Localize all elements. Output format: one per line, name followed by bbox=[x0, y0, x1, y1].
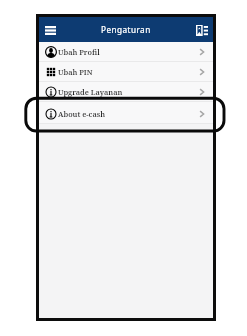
staticText: About e-cash bbox=[58, 109, 106, 119]
button[interactable]: Ubah PIN bbox=[39, 62, 213, 81]
staticText: Pengaturan bbox=[101, 24, 151, 35]
button[interactable]: Open navigation menu bbox=[45, 22, 61, 38]
button[interactable]: About e-cash bbox=[39, 102, 213, 123]
staticText: Upgrade Layanan bbox=[58, 87, 123, 97]
staticText: Ubah Profil bbox=[58, 47, 100, 57]
button[interactable]: Upgrade Layanan bbox=[39, 82, 213, 101]
staticText: Ubah PIN bbox=[58, 67, 93, 77]
button[interactable]: Ubah Profil bbox=[39, 42, 213, 61]
button[interactable]: Contacts bbox=[192, 22, 208, 38]
